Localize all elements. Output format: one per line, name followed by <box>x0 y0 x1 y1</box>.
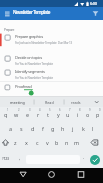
button[interactable]: e <box>22 109 33 119</box>
staticText: h <box>61 125 65 132</box>
staticText: l <box>92 125 94 132</box>
staticText: Read <box>45 100 54 105</box>
button[interactable]: i <box>73 109 83 119</box>
staticText: a <box>9 125 13 132</box>
button[interactable]: r <box>33 109 43 119</box>
button[interactable]: Identify segments <box>0 68 103 82</box>
staticText: 4 <box>39 108 41 112</box>
button[interactable] <box>90 155 100 165</box>
staticText: 3 <box>29 108 31 112</box>
button[interactable]: p <box>93 109 103 119</box>
staticText: Prepare <box>4 27 15 32</box>
staticText: 2 <box>18 108 20 112</box>
button[interactable]: y <box>53 109 63 119</box>
staticText: Prepare graphics <box>15 34 43 40</box>
button[interactable]: u <box>63 109 73 119</box>
button[interactable] <box>91 9 100 18</box>
button[interactable]: k <box>78 123 88 133</box>
staticText: Decide on topics <box>15 55 42 61</box>
button[interactable]: l <box>88 123 98 133</box>
staticText: f <box>42 125 44 132</box>
staticText: u <box>66 111 70 118</box>
button[interactable]: o <box>83 109 93 119</box>
button[interactable]: g <box>48 123 58 133</box>
button[interactable] <box>35 168 69 183</box>
button[interactable]: z <box>10 137 21 147</box>
staticText: 9 <box>89 108 91 112</box>
button[interactable]: Decide on topics <box>0 54 103 68</box>
staticText: . <box>83 154 85 160</box>
staticText: Proofread <box>15 84 32 90</box>
staticText: w <box>14 111 19 118</box>
button[interactable]: d <box>27 123 38 133</box>
button[interactable]: h <box>58 123 68 133</box>
staticText: 6:00 <box>90 1 97 6</box>
staticText: b <box>55 139 59 146</box>
staticText: c <box>36 139 39 146</box>
button[interactable]: s <box>16 123 27 133</box>
staticText: For You in Newsletter Template <box>15 76 53 80</box>
button[interactable]: reads <box>64 97 88 107</box>
button[interactable] <box>0 168 35 183</box>
staticText: 5 <box>49 108 51 112</box>
button[interactable]: m <box>72 137 82 147</box>
button[interactable]: f <box>38 123 48 133</box>
button[interactable] <box>3 10 12 18</box>
staticText: z <box>14 139 17 146</box>
button[interactable]: a <box>5 123 16 133</box>
staticText: o <box>86 111 90 118</box>
staticText: m <box>74 139 80 146</box>
button[interactable]: n <box>62 137 72 147</box>
staticText: d <box>31 125 35 132</box>
staticText: s <box>20 125 23 132</box>
button[interactable]: c <box>32 137 42 147</box>
staticText: g <box>51 125 55 132</box>
staticText: x <box>25 139 28 146</box>
button[interactable]: v <box>42 137 52 147</box>
staticText: t <box>47 111 49 118</box>
staticText: , <box>19 155 21 161</box>
staticText: p <box>96 111 100 118</box>
staticText: 6 <box>59 108 61 112</box>
button[interactable]: j <box>68 123 78 133</box>
staticText: n <box>65 139 69 146</box>
staticText: For You in Newsletter Template <box>15 62 53 66</box>
staticText: Identify segments <box>15 69 45 75</box>
staticText: e <box>26 111 30 118</box>
button[interactable]: Prepare graphics <box>0 33 103 47</box>
staticText: reads <box>71 100 81 105</box>
button[interactable]: w <box>11 109 22 119</box>
button[interactable]: t <box>43 109 53 119</box>
staticText: 0 <box>99 108 101 112</box>
staticText: j <box>72 125 74 132</box>
button[interactable]: Proofread <box>0 83 103 96</box>
button[interactable]: Read <box>36 97 62 107</box>
staticText: v <box>46 139 49 146</box>
button[interactable]: meeting <box>2 97 32 107</box>
staticText: meeting <box>10 100 25 105</box>
staticText: i <box>77 111 79 118</box>
staticText: ?123 <box>2 156 9 161</box>
staticText: For Joshua in Newsletter Template Due Ma… <box>15 41 73 45</box>
staticText: 1 <box>7 108 9 112</box>
button[interactable]: x <box>21 137 32 147</box>
staticText: 7 <box>69 108 71 112</box>
staticText: 8 <box>79 108 81 112</box>
staticText: Newsletter Template <box>13 9 51 15</box>
staticText: r <box>37 111 40 118</box>
staticText: q <box>4 111 8 118</box>
button[interactable]: b <box>52 137 62 147</box>
staticText: y <box>57 111 60 118</box>
button[interactable]: q <box>0 109 11 119</box>
button[interactable] <box>69 168 103 183</box>
staticText: k <box>82 125 85 132</box>
